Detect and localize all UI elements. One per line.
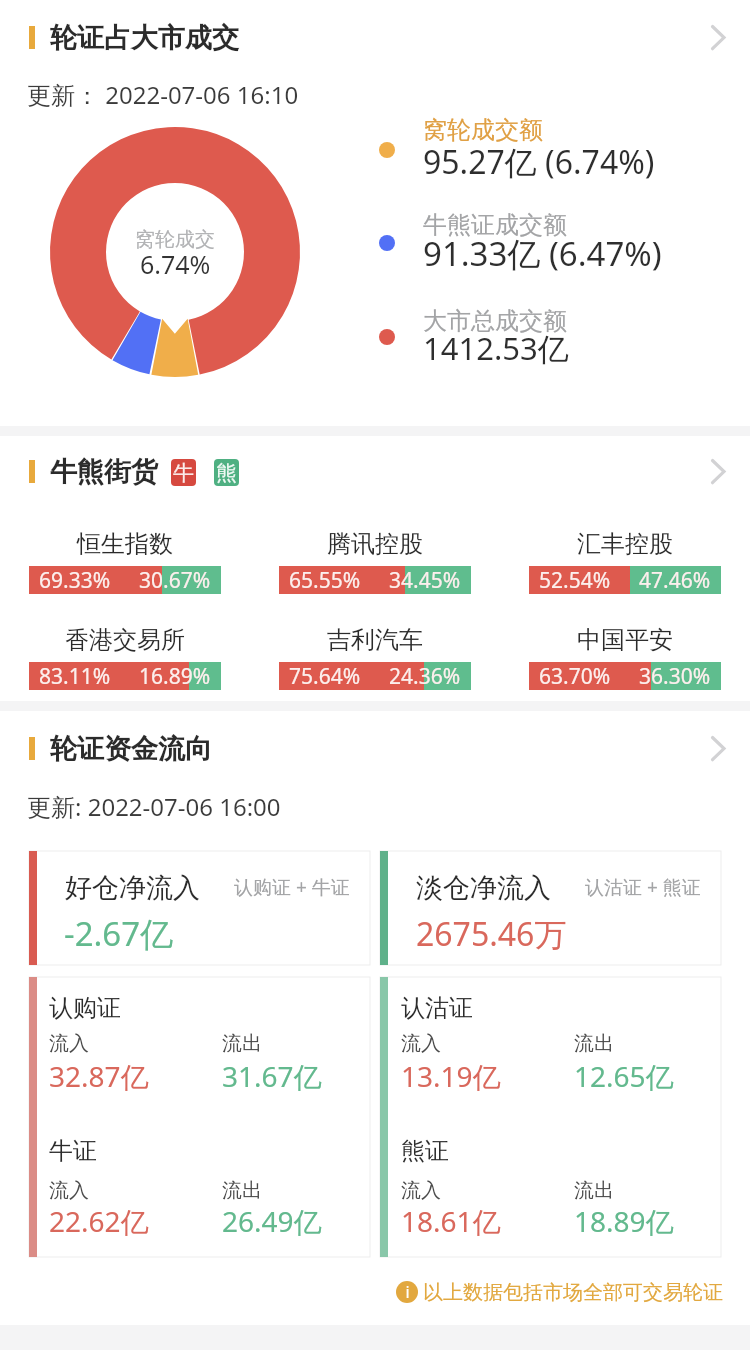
staticText: 流入	[401, 1031, 441, 1056]
staticText: 牛证	[49, 1136, 97, 1166]
staticText: 6.74%	[140, 247, 211, 281]
staticText: 窝轮成交额	[423, 115, 543, 145]
button[interactable]	[29, 623, 221, 691]
button[interactable]	[279, 623, 471, 691]
staticText: 流出	[574, 1031, 614, 1056]
staticText: 牛熊证成交额	[423, 210, 567, 240]
staticText: 26.49亿	[222, 1202, 322, 1240]
staticText: 32.87亿	[49, 1057, 149, 1095]
staticText: 更新: 2022-07-06 16:00	[27, 790, 281, 823]
staticText: 83.11%	[39, 662, 111, 690]
staticText: 18.89亿	[574, 1202, 674, 1240]
staticText: 22.62亿	[49, 1202, 149, 1240]
button[interactable]	[370, 204, 700, 275]
button[interactable]	[29, 977, 370, 1257]
staticText: 以上数据包括市场全部可交易轮证	[423, 1280, 723, 1305]
staticText: 12.65亿	[574, 1057, 674, 1095]
staticText: 31.67亿	[222, 1057, 322, 1095]
button[interactable]	[279, 527, 471, 595]
staticText: 熊证	[401, 1136, 449, 1166]
button[interactable]	[29, 851, 370, 965]
staticText: 窝轮成交	[135, 227, 215, 252]
button[interactable]	[529, 527, 721, 595]
staticText: 24.36%	[389, 662, 461, 690]
button[interactable]	[0, 446, 750, 497]
staticText: 汇丰控股	[577, 529, 673, 559]
button[interactable]	[0, 723, 750, 774]
staticText: 34.45%	[389, 566, 461, 594]
staticText: 认沽证 + 熊证	[585, 874, 701, 900]
staticText: 13.19亿	[401, 1057, 501, 1095]
button[interactable]	[380, 977, 721, 1257]
staticText: 大市总成交额	[423, 306, 567, 336]
staticText: 认购证	[49, 993, 121, 1023]
staticText: 淡仓净流入	[416, 871, 551, 905]
staticText: 流出	[222, 1031, 262, 1056]
staticText: 流出	[222, 1178, 262, 1203]
staticText: 流入	[49, 1031, 89, 1056]
staticText: 2675.46万	[416, 912, 567, 956]
staticText: 流出	[574, 1178, 614, 1203]
staticText: 流入	[49, 1178, 89, 1203]
staticText: 流入	[401, 1178, 441, 1203]
button[interactable]	[529, 623, 721, 691]
staticText: 16.89%	[139, 662, 211, 690]
staticText: 91.33亿 (6.47%)	[423, 231, 662, 276]
staticText: 轮证占大市成交	[50, 21, 239, 55]
button[interactable]	[0, 12, 750, 63]
staticText: 1412.53亿	[423, 327, 569, 369]
staticText: 95.27亿 (6.74%)	[423, 140, 655, 184]
staticText: 30.67%	[139, 566, 211, 594]
staticText: 恒生指数	[77, 529, 173, 559]
staticText: 75.64%	[289, 662, 361, 690]
staticText: 认沽证	[401, 993, 473, 1023]
staticText: 52.54%	[539, 566, 611, 594]
button[interactable]	[390, 1276, 722, 1308]
button[interactable]	[29, 527, 221, 595]
staticText: 吉利汽车	[327, 625, 423, 655]
button[interactable]: More	[694, 449, 738, 493]
staticText: 腾讯控股	[327, 529, 423, 559]
staticText: 更新： 2022-07-06 16:10	[27, 78, 299, 111]
staticText: 65.55%	[289, 566, 361, 594]
staticText: 63.70%	[539, 662, 611, 690]
staticText: 熊	[216, 460, 237, 486]
staticText: 69.33%	[39, 566, 111, 594]
button[interactable]	[380, 851, 721, 965]
staticText: 好仓净流入	[65, 871, 200, 905]
staticText: 36.30%	[639, 662, 711, 690]
staticText: 中国平安	[577, 625, 673, 655]
button[interactable]	[370, 109, 700, 183]
button[interactable]: More	[694, 15, 738, 59]
staticText: i	[405, 1281, 410, 1303]
staticText: 牛熊街货	[50, 455, 158, 489]
staticText: 认购证 + 牛证	[234, 874, 350, 900]
button[interactable]: More	[694, 726, 738, 770]
staticText: 牛	[173, 460, 194, 486]
staticText: 香港交易所	[65, 625, 185, 655]
button[interactable]	[370, 300, 700, 370]
staticText: 18.61亿	[401, 1202, 501, 1240]
staticText: -2.67亿	[64, 911, 174, 956]
staticText: 轮证资金流向	[50, 732, 212, 766]
staticText: 47.46%	[639, 566, 711, 594]
